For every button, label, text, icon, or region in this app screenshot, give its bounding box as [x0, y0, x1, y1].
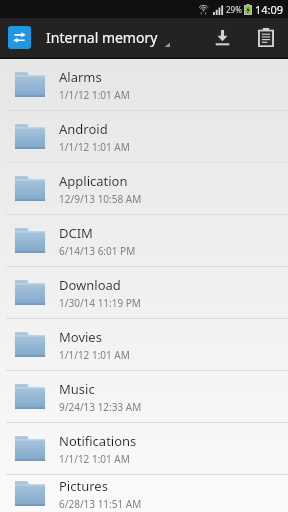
staticText: 1/30/14 11:19 PM — [59, 296, 141, 310]
staticText: Pictures — [59, 477, 108, 495]
staticText: Music — [59, 380, 95, 398]
staticText: Android — [59, 120, 108, 138]
staticText: Download — [59, 276, 121, 294]
button[interactable]: Pictures — [0, 475, 288, 512]
staticText: 6/14/13 6:01 PM — [59, 244, 136, 258]
button[interactable]: Movies — [0, 319, 288, 370]
button[interactable]: Music — [0, 371, 288, 422]
staticText: DCIM — [59, 224, 93, 242]
button[interactable]: Alarms — [0, 59, 288, 110]
staticText: 12/9/13 10:58 AM — [59, 192, 142, 206]
button[interactable]: Internal memory — [44, 22, 172, 53]
button[interactable]: Download — [0, 267, 288, 318]
staticText: 29% — [226, 4, 242, 15]
button[interactable]: Android — [0, 111, 288, 162]
staticText: 1/1/12 1:01 AM — [59, 348, 130, 362]
staticText: 1/1/12 1:01 AM — [59, 140, 130, 154]
button[interactable]: Notifications — [0, 423, 288, 474]
button[interactable]: App icon, switch storage — [8, 26, 31, 49]
staticText: 6/28/13 11:51 AM — [59, 497, 142, 511]
button[interactable]: Clipboard — [244, 18, 288, 57]
button[interactable]: DCIM — [0, 215, 288, 266]
staticText: 14:09 — [255, 2, 284, 17]
staticText: Alarms — [59, 68, 102, 86]
staticText: Notifications — [59, 432, 137, 450]
staticText: 1/1/12 1:01 AM — [59, 452, 130, 466]
staticText: Internal memory — [46, 28, 158, 47]
staticText: Application — [59, 172, 128, 190]
staticText: 9/24/13 12:33 AM — [59, 400, 142, 414]
staticText: Movies — [59, 328, 102, 346]
staticText: 1/1/12 1:01 AM — [59, 88, 130, 102]
button[interactable]: Download — [200, 18, 244, 57]
button[interactable]: Application — [0, 163, 288, 214]
